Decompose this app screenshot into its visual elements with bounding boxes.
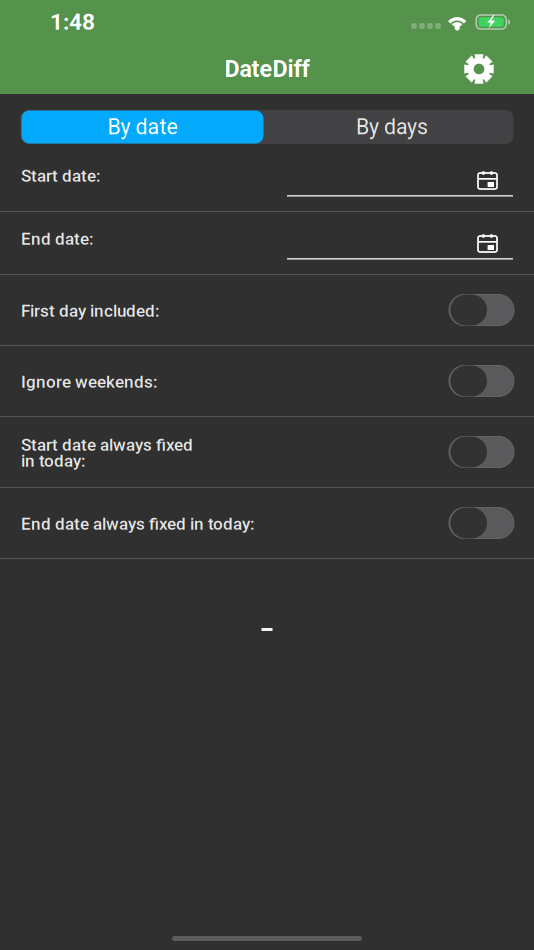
button[interactable]: Toggle: [449, 436, 514, 467]
staticText: DateDiff: [224, 55, 309, 83]
button[interactable]: Pick date: [287, 230, 513, 274]
staticText: End date always fixed in today:: [21, 514, 255, 534]
staticText: Ignore weekends:: [21, 372, 158, 392]
button[interactable]: By date: [21, 110, 263, 143]
button[interactable]: Settings: [455, 45, 503, 93]
button[interactable]: Pick date: [287, 167, 513, 211]
staticText: By days: [356, 114, 428, 139]
staticText: Start date:: [21, 166, 101, 186]
button[interactable]: Toggle: [449, 294, 514, 325]
staticText: Start date always fixed: [21, 435, 193, 455]
staticText: in today:: [21, 451, 86, 471]
button[interactable]: By days: [267, 110, 516, 143]
button[interactable]: Toggle: [449, 507, 514, 538]
button[interactable]: Toggle: [449, 365, 514, 396]
staticText: 1:48: [50, 9, 95, 35]
staticText: First day included:: [21, 301, 160, 321]
staticText: By date: [107, 114, 177, 139]
staticText: End date:: [21, 229, 94, 249]
